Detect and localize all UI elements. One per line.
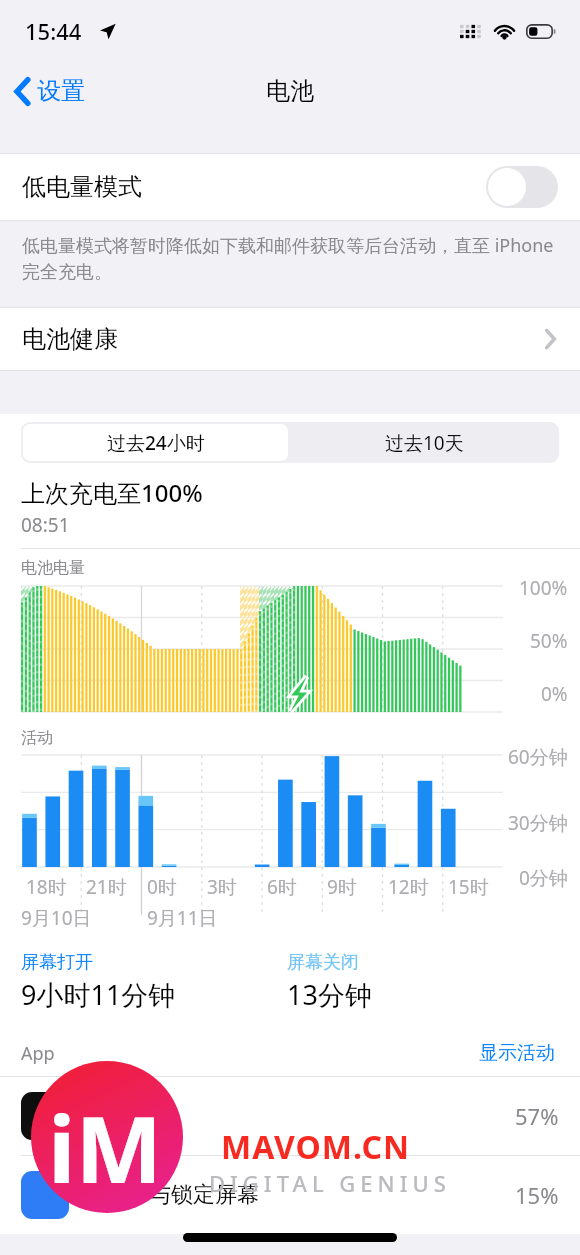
staticText: 60分钟	[508, 744, 568, 770]
staticText: 屏幕打开	[21, 951, 93, 974]
button[interactable]: 电池健康	[0, 308, 580, 370]
staticText: 0时	[147, 874, 177, 900]
staticText: 57%	[515, 1101, 559, 1131]
staticText: 30分钟	[508, 810, 568, 836]
button[interactable]: 主屏幕与锁定屏幕	[0, 1156, 580, 1234]
staticText: iM	[48, 1085, 163, 1210]
button[interactable]: 抖音	[0, 1077, 580, 1155]
staticText: 13分钟	[287, 976, 372, 1013]
staticText: 50%	[530, 628, 568, 654]
staticText: 0分钟	[519, 865, 568, 891]
staticText: 12时	[388, 874, 429, 900]
staticText: 100%	[519, 575, 568, 601]
staticText: 活动	[21, 728, 53, 748]
staticText: 设置	[37, 76, 85, 106]
staticText: 低电量模式将暂时降低如下载和邮件获取等后台活动，直至 iPhone 完全充电。	[22, 233, 566, 283]
staticText: App	[21, 1041, 55, 1066]
button[interactable]: 低电量模式	[0, 154, 580, 220]
staticText: 过去10天	[385, 430, 464, 456]
staticText: MAVOM.CN	[221, 1125, 410, 1169]
staticText: DIGITAL GENIUS	[209, 1168, 451, 1198]
staticText: 电池电量	[21, 558, 85, 578]
button[interactable]: 过去24小时	[23, 424, 288, 461]
staticText: 21时	[86, 874, 127, 900]
staticText: 08:51	[21, 512, 70, 538]
staticText: 屏幕关闭	[287, 951, 359, 974]
staticText: 6时	[267, 874, 297, 900]
staticText: 9月11日	[147, 905, 218, 931]
staticText: 显示活动	[479, 1041, 555, 1065]
staticText: 15%	[515, 1180, 559, 1210]
staticText: 低电量模式	[22, 172, 142, 202]
staticText: 18时	[26, 874, 67, 900]
button[interactable]: 过去10天	[290, 422, 559, 463]
staticText: 0%	[541, 681, 568, 707]
staticText: 9时	[327, 874, 357, 900]
staticText: 15时	[448, 874, 489, 900]
button[interactable]: 低电量模式开关	[486, 166, 558, 208]
button[interactable]: 设置	[0, 70, 97, 112]
staticText: 过去24小时	[107, 430, 205, 456]
staticText: 9小时11分钟	[21, 976, 176, 1013]
staticText: 电池	[266, 76, 314, 106]
staticText: 3时	[207, 874, 237, 900]
staticText: 主屏幕与锁定屏幕	[83, 1181, 259, 1209]
staticText: 9月10日	[21, 905, 92, 931]
staticText: 上次充电至100%	[21, 476, 203, 509]
staticText: 抖音	[83, 1102, 127, 1130]
button[interactable]: 显示活动	[475, 1037, 559, 1069]
staticText: 电池健康	[22, 324, 118, 354]
staticText: 15:44	[25, 16, 82, 46]
